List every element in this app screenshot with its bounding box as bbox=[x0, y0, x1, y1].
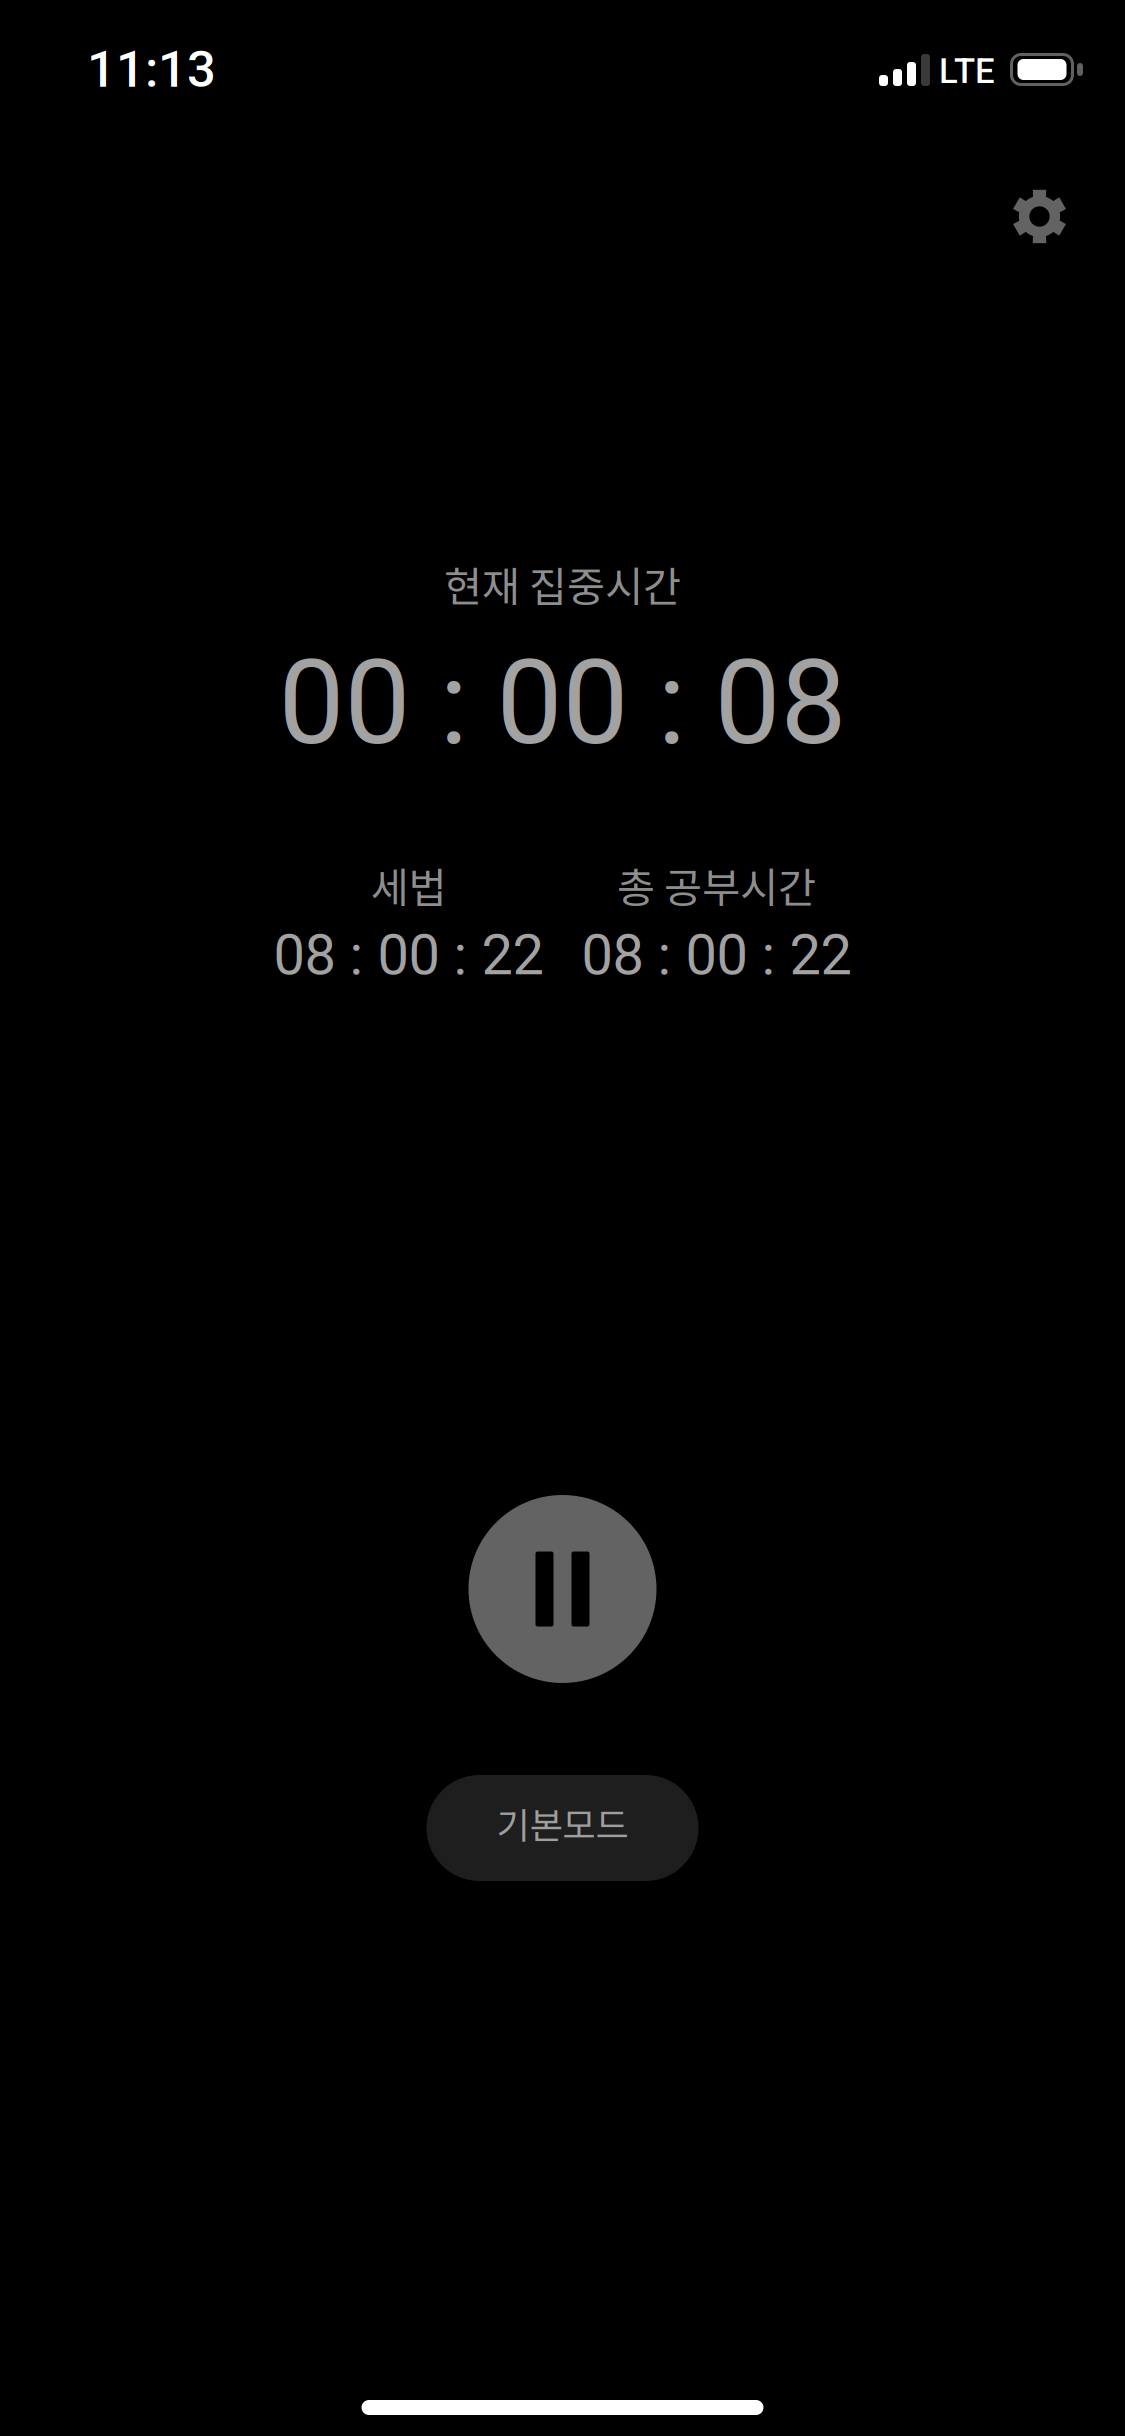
staticText: 11:13 bbox=[87, 40, 216, 99]
staticText: 00 : 00 : 08 bbox=[278, 634, 846, 772]
staticText: 세법 bbox=[370, 855, 446, 915]
staticText: 08 : 00 : 22 bbox=[273, 922, 543, 988]
staticText: 총 공부시간 bbox=[617, 855, 816, 915]
button[interactable]: Settings bbox=[990, 167, 1089, 266]
button[interactable]: Pause bbox=[468, 1495, 656, 1683]
button[interactable]: 기본모드 bbox=[426, 1775, 698, 1881]
staticText: LTE bbox=[939, 51, 995, 92]
staticText: 08 : 00 : 22 bbox=[581, 922, 851, 988]
staticText: 현재 집중시간 bbox=[444, 554, 681, 614]
staticText: 기본모드 bbox=[496, 1797, 628, 1849]
